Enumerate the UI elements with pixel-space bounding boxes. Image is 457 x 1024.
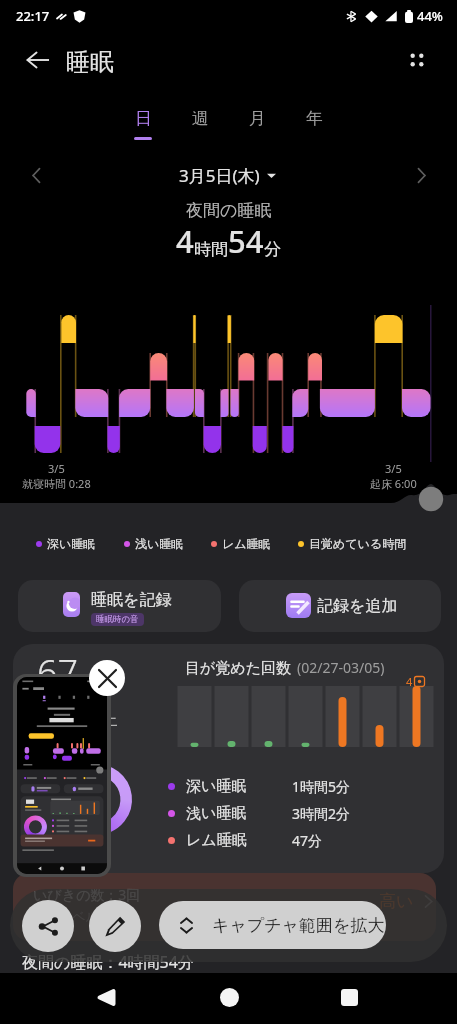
- staticText: 47分: [292, 831, 323, 850]
- staticText: 年: [306, 108, 323, 129]
- staticText: レム睡眠: [222, 536, 271, 551]
- staticText: 1時間5分: [292, 777, 351, 796]
- button[interactable]: Previous day: [22, 160, 52, 190]
- staticText: 3時間2分: [292, 804, 351, 823]
- button[interactable]: Back: [83, 973, 131, 1021]
- staticText: 夜間の睡眠: [186, 200, 272, 221]
- button[interactable]: More options: [395, 38, 439, 82]
- staticText: 夜間の睡眠：4時間54分: [22, 951, 194, 973]
- staticText: 目覚めている時間: [309, 536, 407, 551]
- staticText: 22:17: [16, 7, 50, 25]
- staticText: 日: [135, 108, 152, 129]
- staticText: 睡眠を記録: [91, 590, 172, 610]
- staticText: 就寝時間 0:28: [22, 476, 91, 491]
- staticText: 深い睡眠: [186, 777, 247, 796]
- staticText: 4: [176, 220, 194, 262]
- staticText: 記録を追加: [317, 596, 398, 616]
- button[interactable]: 67: [13, 644, 444, 873]
- button[interactable]: Back: [16, 38, 60, 82]
- staticText: 睡眠: [66, 47, 114, 77]
- button[interactable]: 日: [119, 108, 167, 148]
- staticText: いびきの数：3回: [33, 885, 141, 904]
- staticText: 3/5: [385, 461, 402, 476]
- button[interactable]: 3月5日(木): [179, 163, 276, 187]
- button[interactable]: Home: [205, 973, 253, 1021]
- button[interactable]: いびきの数：3回: [13, 873, 436, 941]
- button[interactable]: 週: [176, 108, 224, 148]
- staticText: 4: [406, 674, 413, 689]
- staticText: 平均レベル：高: [33, 908, 125, 924]
- staticText: 目が覚めた回数: [185, 659, 292, 678]
- button[interactable]: 年: [290, 108, 338, 148]
- staticText: 67: [37, 648, 79, 697]
- staticText: 週: [192, 108, 209, 129]
- button[interactable]: Recent apps: [325, 973, 373, 1021]
- staticText: 高い: [379, 891, 414, 912]
- staticText: (02/27-03/05): [297, 658, 385, 677]
- staticText: 浅い睡眠: [186, 804, 247, 823]
- staticText: 時間: [194, 239, 228, 260]
- staticText: 深い睡眠: [47, 536, 96, 551]
- staticText: 浅い睡眠: [135, 536, 184, 551]
- staticText: レム睡眠: [186, 831, 247, 850]
- staticText: 起床 6:00: [370, 476, 417, 491]
- button[interactable]: 月: [233, 108, 281, 148]
- staticText: 月: [249, 108, 266, 129]
- button[interactable]: Share: [22, 900, 74, 952]
- button[interactable]: Next day: [405, 160, 435, 190]
- button[interactable]: Edit: [89, 900, 141, 952]
- button[interactable]: 記録を追加: [239, 580, 441, 632]
- staticText: 分: [264, 239, 281, 260]
- button[interactable]: [13, 674, 111, 877]
- button[interactable]: キャプチャ範囲を拡大: [159, 901, 386, 949]
- staticText: 3/5: [48, 461, 65, 476]
- staticText: キャプチャ範囲を拡大: [212, 915, 385, 936]
- button[interactable]: 睡眠を記録: [18, 580, 221, 632]
- staticText: 睡眠時の音: [96, 614, 139, 625]
- staticText: 44%: [417, 7, 443, 25]
- staticText: 3月5日(木): [179, 164, 260, 187]
- staticText: 54: [228, 220, 264, 262]
- staticText: 平均より上: [37, 710, 118, 730]
- button[interactable]: Close screenshot preview: [89, 660, 125, 696]
